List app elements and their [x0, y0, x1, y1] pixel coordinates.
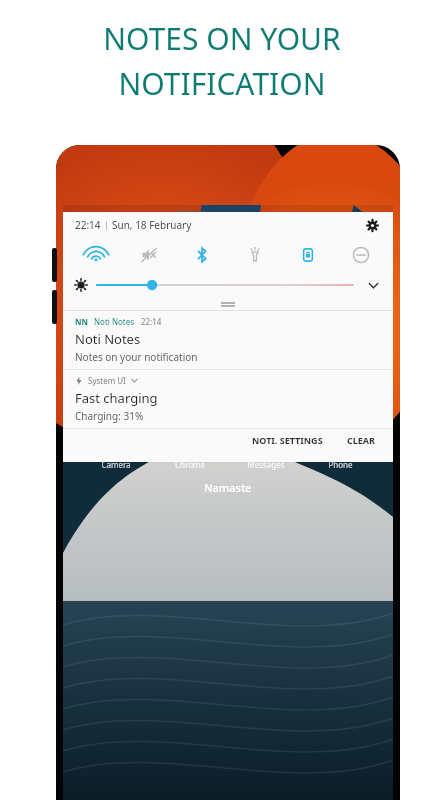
staticText: System UI	[88, 375, 126, 386]
staticText: Chrome	[175, 459, 205, 470]
staticText: NOTI. SETTINGS	[252, 434, 323, 446]
button[interactable]: Settings	[361, 214, 383, 236]
button[interactable]: ६	[71, 310, 149, 348]
staticText: Noti Notes	[75, 330, 141, 348]
button[interactable]: Camera	[89, 420, 143, 470]
button[interactable]: Flashlight	[228, 238, 281, 272]
staticText: Charging: 31%	[75, 409, 144, 423]
button[interactable]: Sound off	[122, 238, 175, 272]
staticText: Camera	[101, 459, 131, 470]
staticText: Notes on your notification	[75, 350, 198, 364]
button[interactable]: Do not disturb	[334, 238, 387, 272]
button[interactable]: Chrome	[163, 420, 217, 470]
staticText: Game Launcher	[313, 280, 367, 302]
staticText: Namaste	[204, 480, 252, 495]
staticText: ६	[107, 317, 114, 335]
staticText: Phone	[328, 459, 353, 470]
button[interactable]: 3	[239, 241, 293, 291]
staticText: CLEAR	[347, 434, 375, 446]
staticText: Sun, 18 February	[112, 218, 192, 232]
staticText: Viber	[180, 354, 200, 365]
button[interactable]: NN	[63, 311, 393, 369]
staticText: Messages	[247, 459, 285, 470]
button[interactable]: Expand	[363, 275, 383, 295]
staticText: Noti Notes	[94, 316, 135, 327]
staticText: Fast charging	[75, 389, 158, 407]
button[interactable]: CLEAR	[341, 431, 381, 449]
button[interactable]: 3	[163, 315, 217, 365]
button[interactable]: Rotation lock	[281, 238, 334, 272]
button[interactable]: Game Launcher	[313, 241, 367, 302]
button[interactable]	[97, 278, 353, 292]
staticText: NN	[75, 316, 89, 327]
staticText: Noti Notes	[239, 209, 290, 223]
staticText: Snapchat	[249, 280, 284, 291]
staticText: Gallery	[103, 354, 130, 365]
button[interactable]: Phone	[313, 420, 367, 470]
button[interactable]: System UI	[63, 370, 393, 428]
button[interactable]: Bluetooth	[175, 238, 228, 272]
button[interactable]: Gallery	[89, 315, 143, 365]
button[interactable]: NOTI. SETTINGS	[246, 431, 329, 449]
button[interactable]: 58	[239, 420, 293, 470]
button[interactable]: Wi-Fi	[69, 238, 122, 272]
staticText: NOTES ON YOUR	[103, 18, 341, 59]
staticText: दिन बाकी	[101, 335, 119, 342]
staticText: 22:14	[75, 218, 101, 232]
staticText: NOTIFICATION	[118, 63, 326, 104]
staticText: 22:14	[141, 316, 162, 327]
staticText: 58	[276, 420, 285, 430]
